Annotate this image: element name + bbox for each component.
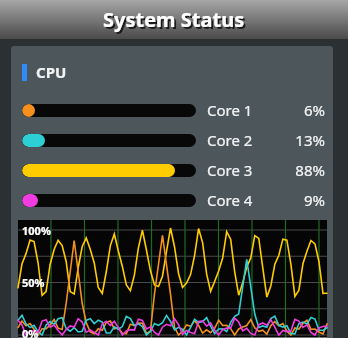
staticText: CPU xyxy=(36,62,67,82)
button[interactable]: System Status xyxy=(0,0,348,39)
staticText: 100% xyxy=(22,223,51,238)
staticText: Core 1 xyxy=(207,100,253,120)
staticText: 9% xyxy=(269,190,325,210)
staticText: 88% xyxy=(269,160,325,180)
staticText: 13% xyxy=(269,130,325,150)
staticText: Core 2 xyxy=(207,130,253,150)
button[interactable]: CPU usage history graph xyxy=(18,220,327,338)
button[interactable]: Core 4 xyxy=(11,186,333,214)
staticText: System Status xyxy=(103,6,245,33)
staticText: Core 4 xyxy=(207,190,253,210)
button[interactable]: Core 1 xyxy=(11,96,333,124)
button[interactable]: Core 2 xyxy=(11,126,333,154)
staticText: 0% xyxy=(22,326,39,338)
staticText: 50% xyxy=(22,275,45,290)
button[interactable]: Core 3 xyxy=(11,156,333,184)
button[interactable]: CPU xyxy=(22,62,67,82)
staticText: System Status xyxy=(105,8,247,35)
staticText: Core 3 xyxy=(207,160,253,180)
staticText: 6% xyxy=(269,100,325,120)
